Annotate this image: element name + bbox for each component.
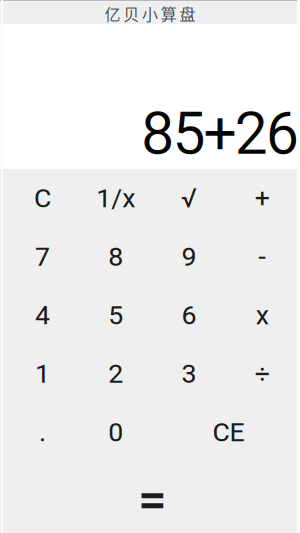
staticText: + (255, 183, 270, 214)
staticText: ÷ (255, 358, 270, 389)
button[interactable]: 8 (79, 227, 152, 286)
staticText: 2 (108, 358, 123, 389)
button[interactable]: 1/x (79, 169, 152, 227)
staticText: 1/x (96, 183, 135, 214)
staticText: 8 (108, 241, 123, 272)
button[interactable]: CE (152, 403, 299, 461)
staticText: . (39, 417, 46, 448)
staticText: = (138, 470, 167, 530)
staticText: 3 (181, 358, 196, 389)
staticText: 6 (181, 300, 196, 331)
button[interactable]: 1 (6, 344, 79, 403)
button[interactable]: 4 (6, 286, 79, 344)
staticText: √ (181, 183, 197, 214)
button[interactable]: = (6, 461, 299, 532)
button[interactable]: . (6, 403, 79, 461)
staticText: 9 (181, 241, 196, 272)
button[interactable]: 3 (152, 344, 226, 403)
button[interactable]: 0 (79, 403, 152, 461)
button[interactable]: x (226, 286, 299, 344)
staticText: 7 (35, 241, 50, 272)
staticText: 5 (108, 300, 123, 331)
staticText: - (258, 241, 266, 272)
staticText: CE (213, 417, 245, 448)
button[interactable]: 9 (152, 227, 226, 286)
staticText: 85+26 (141, 99, 299, 168)
staticText: 0 (108, 417, 123, 448)
staticText: 贝 (123, 2, 139, 25)
button[interactable]: C (6, 169, 79, 227)
button[interactable]: ÷ (226, 344, 299, 403)
button[interactable]: 2 (79, 344, 152, 403)
staticText: 盘 (180, 2, 196, 25)
staticText: x (256, 300, 269, 331)
button[interactable]: + (226, 169, 299, 227)
button[interactable]: - (226, 227, 299, 286)
button[interactable]: 7 (6, 227, 79, 286)
button[interactable]: 6 (152, 286, 226, 344)
staticText: 小 (142, 2, 158, 25)
staticText: 1 (35, 358, 50, 389)
staticText: 算 (161, 2, 177, 25)
button[interactable]: √ (152, 169, 226, 227)
staticText: 4 (35, 300, 50, 331)
staticText: C (34, 183, 51, 214)
staticText: 亿 (104, 2, 120, 25)
button[interactable]: 5 (79, 286, 152, 344)
